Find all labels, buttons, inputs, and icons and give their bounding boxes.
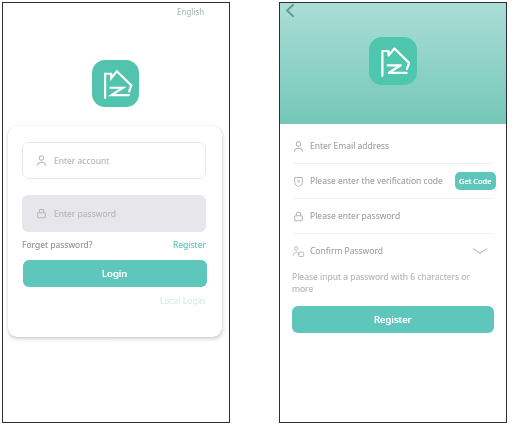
button[interactable]: Register [292,306,494,333]
staticText: Get Code [459,176,492,186]
staticText: English [177,6,205,17]
staticText: Enter account [54,155,110,167]
button[interactable]: Register [173,239,206,251]
button[interactable]: English [174,4,208,19]
button[interactable]: Enter password [22,195,206,232]
button[interactable]: Enter account [22,142,206,179]
staticText: Login [102,267,128,280]
button[interactable]: Login [23,260,207,287]
staticText: Confirm Password [310,245,383,257]
staticText: Please enter the verification code [310,175,443,187]
button[interactable]: Local Login [160,295,206,307]
button[interactable]: Confirm Password [279,234,507,268]
button[interactable]: Please enter password [279,199,507,233]
staticText: Please enter password [310,210,401,222]
staticText: Register [173,239,206,251]
button[interactable]: Back [279,0,300,21]
staticText: Enter password [54,208,117,220]
staticText: Enter Email address [310,140,390,152]
staticText: Local Login [160,295,206,307]
staticText: Please input a password with 6 character… [292,271,484,295]
button[interactable]: Please enter the verification code [279,164,507,198]
staticText: Forget password? [22,239,93,251]
button[interactable]: Get Code [455,172,496,190]
staticText: Register [374,313,412,326]
button[interactable]: Enter Email address [279,129,507,163]
button[interactable]: Forget password? [22,239,93,251]
